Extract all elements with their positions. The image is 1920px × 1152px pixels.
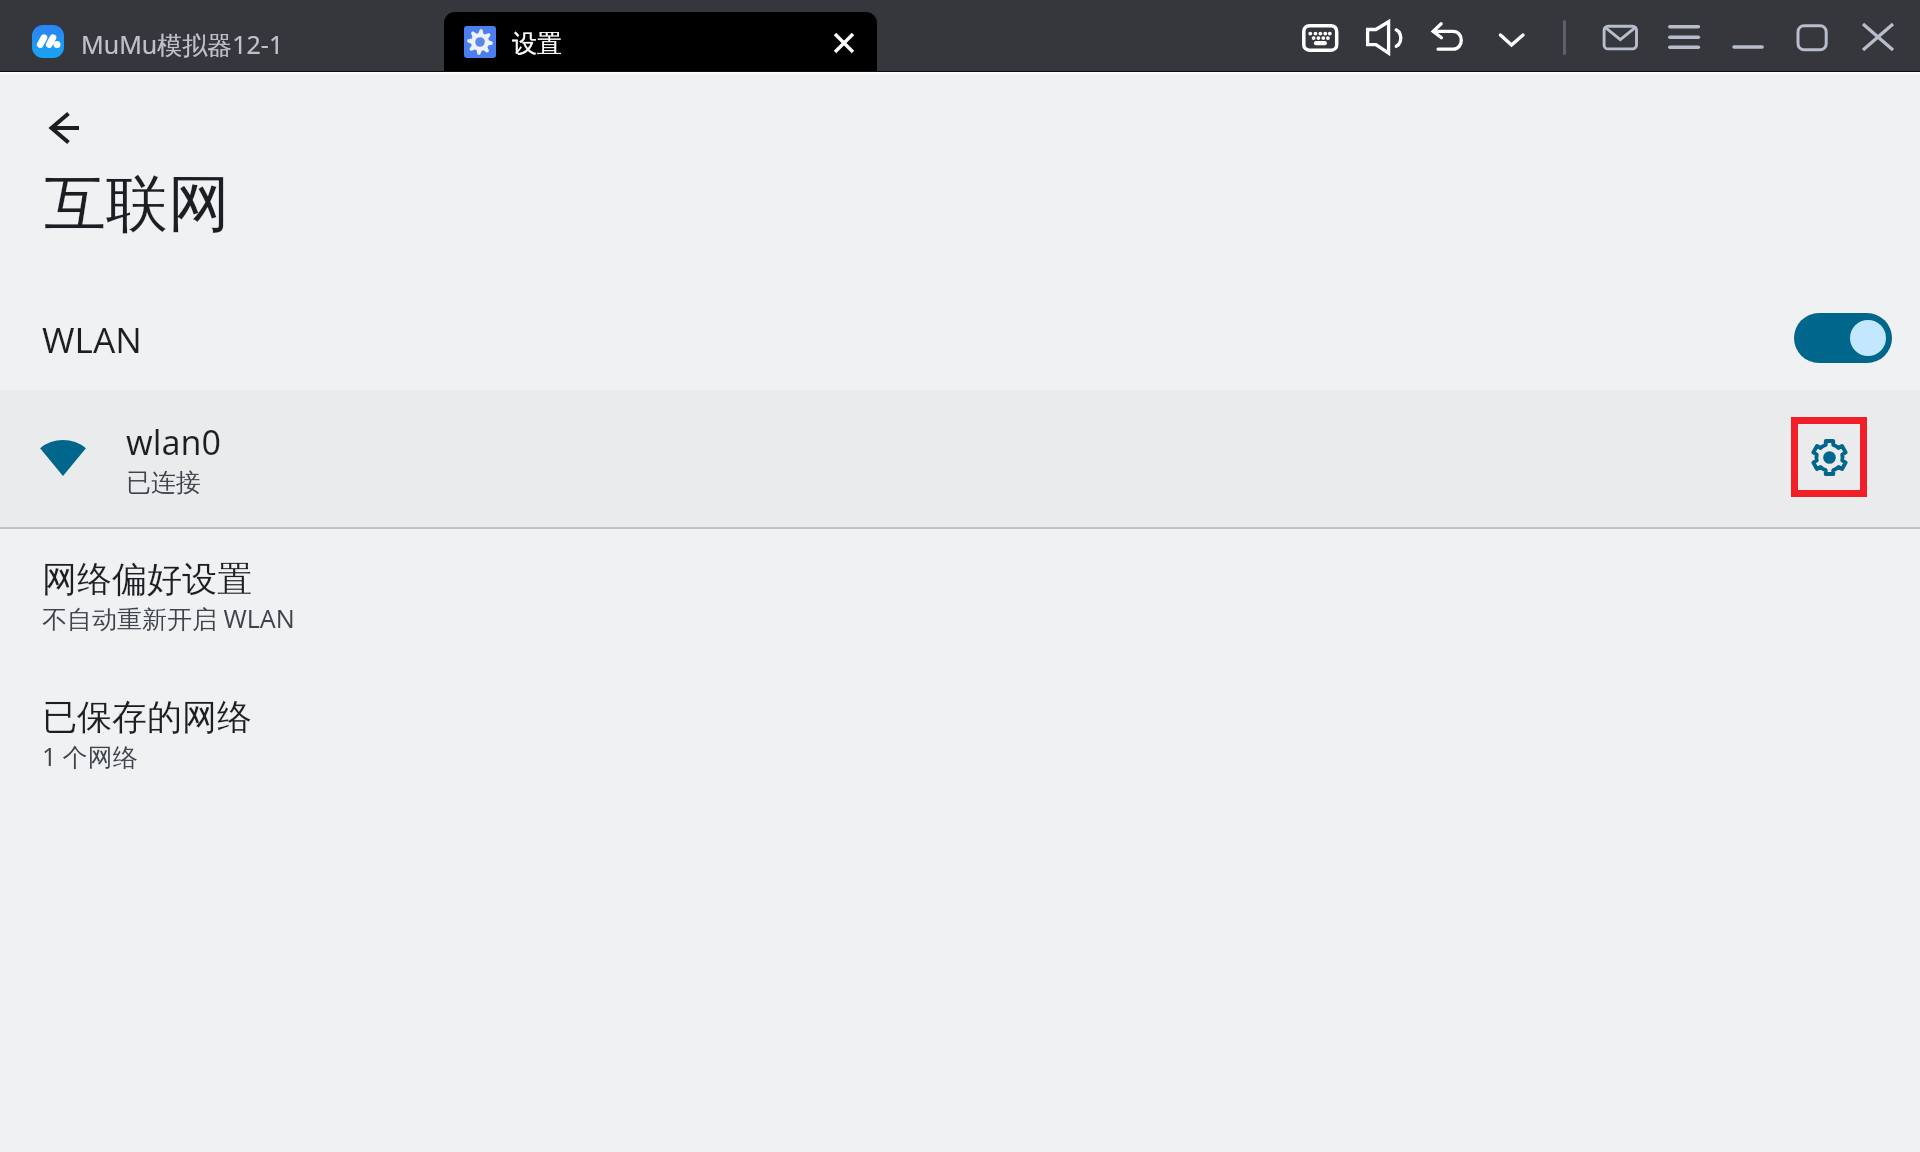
- staticText: WLAN: [42, 316, 142, 364]
- button[interactable]: Mail: [1594, 16, 1646, 60]
- button[interactable]: Menu: [1660, 16, 1708, 60]
- button[interactable]: Undo: [1422, 14, 1474, 62]
- staticText: 设置: [512, 28, 562, 59]
- button[interactable]: More: [1490, 20, 1534, 56]
- button[interactable]: wlan0: [0, 390, 1920, 527]
- staticText: 已保存的网络: [42, 695, 252, 739]
- button[interactable]: Close: [1853, 14, 1905, 62]
- staticText: 互联网: [44, 165, 230, 243]
- staticText: 已连接: [126, 467, 201, 498]
- button[interactable]: Keyboard: [1294, 16, 1346, 60]
- staticText: 1 个网络: [42, 739, 138, 773]
- staticText: MuMu模拟器12-1: [81, 27, 284, 61]
- staticText: wlan0: [126, 419, 222, 465]
- button[interactable]: Volume: [1358, 14, 1410, 62]
- button[interactable]: Minimize: [1724, 16, 1772, 60]
- button[interactable]: 设置: [444, 12, 877, 72]
- button[interactable]: 网络偏好设置: [0, 538, 1920, 658]
- button[interactable]: Back: [35, 98, 95, 158]
- button[interactable]: Close tab: [824, 24, 860, 60]
- staticText: 网络偏好设置: [42, 557, 252, 601]
- staticText: 不自动重新开启 WLAN: [42, 601, 295, 635]
- button[interactable]: MuMu emulator: [24, 18, 72, 66]
- button[interactable]: Network settings: [1791, 417, 1867, 497]
- button[interactable]: Maximize: [1788, 16, 1836, 60]
- button[interactable]: 已保存的网络: [0, 676, 1920, 796]
- button[interactable]: WLAN toggle: [1794, 313, 1892, 363]
